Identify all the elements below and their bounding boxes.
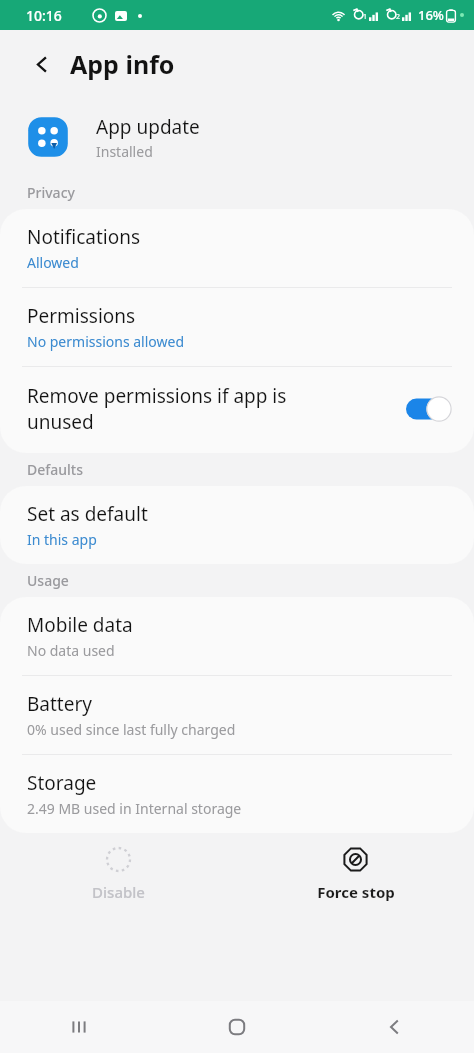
staticText: In this app: [27, 530, 97, 549]
button[interactable]: Battery: [0, 676, 474, 754]
staticText: No permissions allowed: [27, 332, 185, 351]
staticText: 1: [363, 12, 368, 22]
staticText: Permissions: [27, 303, 136, 329]
button[interactable]: Recents: [0, 1001, 158, 1053]
button[interactable]: Permissions: [0, 288, 474, 366]
staticText: Set as default: [27, 501, 148, 527]
staticText: Mobile data: [27, 612, 133, 638]
staticText: Remove permissions if app is unused: [27, 383, 396, 435]
button[interactable]: Storage: [0, 755, 474, 833]
button[interactable]: App update: [0, 98, 474, 176]
button[interactable]: Notifications: [0, 209, 474, 287]
staticText: Defaults: [27, 460, 83, 479]
staticText: 2: [396, 12, 401, 22]
staticText: Notifications: [27, 224, 141, 250]
staticText: Force stop: [317, 882, 395, 902]
button[interactable]: Remove permissions if app is unused: [0, 367, 474, 453]
staticText: Allowed: [27, 253, 79, 272]
staticText: App update: [96, 114, 200, 140]
staticText: Usage: [27, 571, 69, 590]
button[interactable]: Remove permissions if app is unused togg…: [406, 396, 452, 422]
button[interactable]: Mobile data: [0, 597, 474, 675]
button[interactable]: Back: [26, 48, 58, 80]
button[interactable]: Set as default: [0, 486, 474, 564]
button[interactable]: Force stop: [237, 837, 474, 911]
staticText: 16%: [418, 6, 444, 24]
staticText: No data used: [27, 641, 115, 660]
button[interactable]: Back: [316, 1001, 474, 1053]
staticText: 2.49 MB used in Internal storage: [27, 799, 242, 818]
staticText: Installed: [96, 142, 153, 161]
staticText: Battery: [27, 691, 92, 717]
staticText: 0% used since last fully charged: [27, 720, 236, 739]
staticText: Privacy: [27, 183, 75, 202]
button[interactable]: Disable: [0, 837, 237, 911]
button[interactable]: Home: [158, 1001, 316, 1053]
staticText: 10:16: [26, 6, 62, 25]
staticText: Storage: [27, 770, 97, 796]
staticText: Disable: [92, 882, 145, 902]
staticText: App info: [70, 47, 175, 81]
